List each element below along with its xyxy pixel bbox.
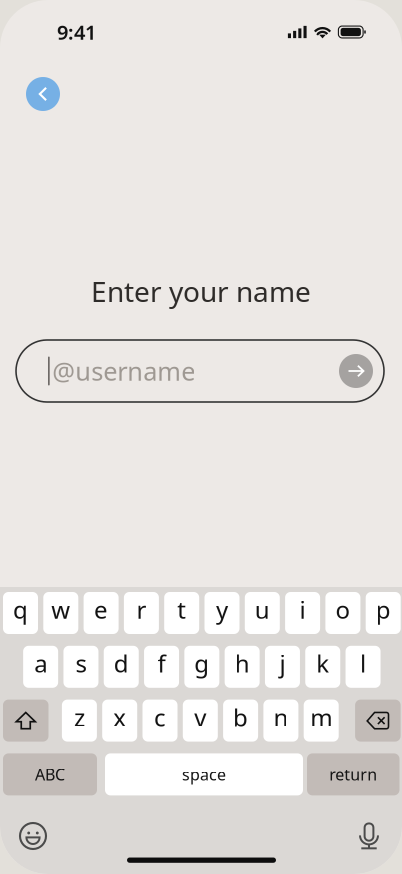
button[interactable]: Shift	[3, 700, 48, 742]
button[interactable]: s	[63, 646, 98, 688]
staticText: t	[177, 594, 186, 625]
button[interactable]: z	[62, 700, 97, 742]
staticText: c	[154, 701, 166, 733]
staticText: l	[360, 647, 366, 679]
staticText: y	[216, 594, 228, 625]
button[interactable]: f	[144, 646, 179, 688]
staticText: ABC	[35, 764, 65, 785]
staticText: p	[376, 594, 391, 625]
button[interactable]: Dictation	[347, 814, 391, 858]
button[interactable]: p	[366, 592, 401, 634]
button[interactable]: v	[183, 700, 218, 742]
button[interactable]: Delete	[355, 700, 401, 742]
staticText: @username	[52, 354, 195, 388]
button[interactable]: space	[105, 753, 303, 795]
staticText: o	[335, 594, 350, 625]
button[interactable]: m	[304, 700, 339, 742]
staticText: g	[194, 647, 209, 679]
button[interactable]: g	[184, 646, 219, 688]
button[interactable]: Back	[26, 77, 60, 111]
button[interactable]: q	[3, 592, 38, 634]
button[interactable]: x	[102, 700, 137, 742]
button[interactable]: d	[104, 646, 139, 688]
staticText: e	[94, 594, 108, 625]
button[interactable]: return	[307, 753, 399, 795]
button[interactable]: j	[265, 646, 300, 688]
staticText: h	[235, 647, 250, 679]
staticText: return	[329, 764, 377, 785]
staticText: 9:41	[57, 19, 96, 45]
staticText: w	[51, 594, 70, 625]
button[interactable]: r	[124, 592, 159, 634]
button[interactable]: o	[325, 592, 360, 634]
staticText: n	[273, 701, 288, 733]
button[interactable]: a	[23, 646, 58, 688]
button[interactable]: Emoji	[11, 814, 55, 858]
button[interactable]: y	[204, 592, 239, 634]
button[interactable]: t	[164, 592, 199, 634]
staticText: f	[157, 647, 165, 679]
staticText: j	[279, 647, 285, 679]
staticText: a	[34, 647, 47, 679]
button[interactable]: e	[84, 592, 119, 634]
button[interactable]: k	[305, 646, 340, 688]
staticText: Enter your name	[91, 272, 311, 310]
button[interactable]: h	[225, 646, 260, 688]
staticText: space	[182, 764, 226, 785]
button[interactable]: Continue	[339, 354, 373, 388]
staticText: v	[194, 701, 206, 733]
staticText: z	[74, 701, 85, 733]
button[interactable]: n	[263, 700, 298, 742]
staticText: x	[113, 701, 126, 733]
button[interactable]: l	[346, 646, 381, 688]
staticText: k	[316, 647, 329, 679]
staticText: s	[75, 647, 86, 679]
staticText: m	[310, 701, 332, 733]
button[interactable]: w	[43, 592, 78, 634]
button[interactable]: u	[245, 592, 280, 634]
staticText: r	[136, 594, 146, 625]
button[interactable]: b	[223, 700, 258, 742]
staticText: i	[300, 594, 306, 625]
staticText: d	[114, 647, 129, 679]
button[interactable]: ABC	[3, 753, 97, 795]
staticText: u	[255, 594, 270, 625]
button[interactable]: c	[142, 700, 177, 742]
staticText: b	[233, 701, 248, 733]
staticText: q	[13, 594, 28, 625]
button[interactable]: i	[285, 592, 320, 634]
